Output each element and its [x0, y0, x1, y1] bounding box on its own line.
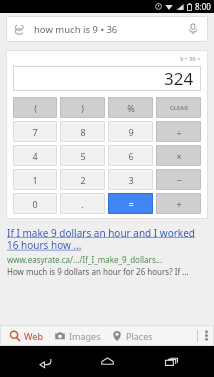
- button[interactable]: =: [108, 193, 153, 214]
- staticText: 7: [32, 126, 38, 138]
- staticText: If I make 9 dollars an hour and I worked…: [7, 226, 195, 252]
- button[interactable]: 9: [108, 121, 153, 142]
- staticText: Images: [69, 330, 101, 342]
- staticText: 4: [32, 150, 38, 162]
- staticText: how much is 9 • 36: [34, 23, 118, 36]
- button[interactable]: 6: [108, 145, 153, 166]
- staticText: 2: [80, 174, 86, 186]
- button[interactable]: CLEAR: [156, 97, 201, 118]
- staticText: www.easyrate.ca/.../If_I_make_9_dollars.…: [7, 254, 163, 265]
- staticText: 9 • 36 =: [180, 55, 201, 63]
- button[interactable]: +: [156, 193, 201, 214]
- staticText: How much is 9 dollars an hour for 26 hou…: [7, 266, 189, 277]
- staticText: Web: [24, 330, 44, 342]
- staticText: CLEAR: [170, 104, 188, 112]
- staticText: (: [34, 102, 37, 114]
- staticText: ): [81, 102, 84, 114]
- button[interactable]: (: [13, 97, 57, 118]
- button[interactable]: 324: [13, 66, 201, 91]
- button[interactable]: %: [108, 97, 153, 118]
- staticText: %: [127, 102, 135, 114]
- staticText: =: [128, 198, 134, 210]
- staticText: +: [176, 198, 182, 210]
- button[interactable]: If I make 9 dollars an hour and I worked…: [0, 226, 214, 277]
- button[interactable]: Images: [54, 330, 101, 342]
- staticText: .: [81, 198, 84, 210]
- staticText: 9: [128, 126, 134, 138]
- button[interactable]: 7: [13, 121, 57, 142]
- button[interactable]: Back: [24, 346, 64, 377]
- button[interactable]: how much is 9 • 36: [6, 16, 208, 42]
- staticText: 5: [80, 150, 86, 162]
- staticText: Places: [126, 330, 153, 342]
- button[interactable]: 8: [60, 121, 105, 142]
- button[interactable]: ÷: [156, 121, 201, 142]
- staticText: ÷: [176, 126, 182, 138]
- staticText: 3: [128, 174, 134, 186]
- staticText: 324: [164, 67, 194, 90]
- staticText: 8: [80, 126, 86, 138]
- button[interactable]: Home: [87, 346, 127, 377]
- staticText: ×: [176, 150, 182, 162]
- button[interactable]: .: [60, 193, 105, 214]
- button[interactable]: 2: [60, 169, 105, 190]
- button[interactable]: 0: [13, 193, 57, 214]
- button[interactable]: ×: [156, 145, 201, 166]
- button[interactable]: −: [156, 169, 201, 190]
- button[interactable]: 4: [13, 145, 57, 166]
- button[interactable]: 3: [108, 169, 153, 190]
- staticText: 8:00: [195, 1, 211, 12]
- staticText: 1: [32, 174, 38, 186]
- button[interactable]: More options: [198, 325, 214, 346]
- button[interactable]: Voice search: [186, 22, 200, 36]
- button[interactable]: Recent apps: [151, 346, 191, 377]
- button[interactable]: Web: [9, 330, 44, 342]
- staticText: −: [176, 174, 182, 186]
- staticText: 0: [32, 198, 38, 210]
- button[interactable]: ): [60, 97, 105, 118]
- button[interactable]: Places: [111, 330, 153, 342]
- staticText: 6: [128, 150, 134, 162]
- button[interactable]: 5: [60, 145, 105, 166]
- button[interactable]: 1: [13, 169, 57, 190]
